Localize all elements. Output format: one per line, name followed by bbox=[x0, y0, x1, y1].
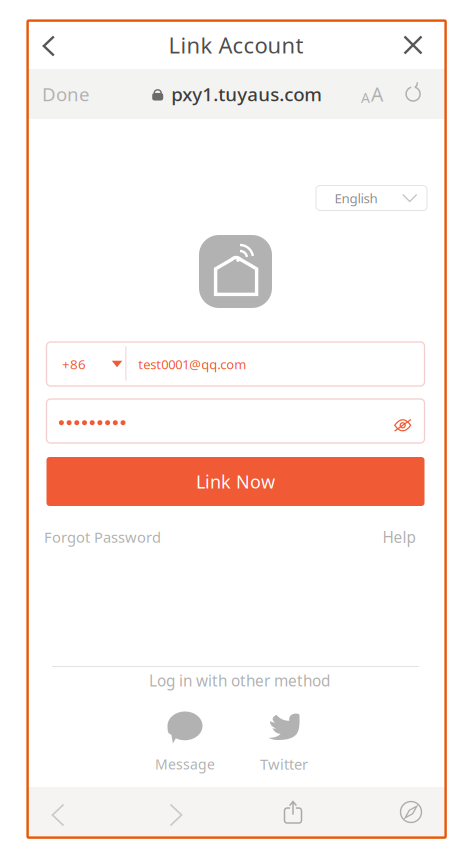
button[interactable]: Back bbox=[28, 790, 88, 840]
staticText: Help bbox=[382, 527, 415, 547]
button[interactable]: Twitter bbox=[239, 709, 329, 775]
staticText: Done bbox=[42, 81, 90, 107]
staticText: Twitter bbox=[260, 754, 308, 774]
staticText: English bbox=[334, 189, 377, 207]
staticText: +86 bbox=[62, 355, 86, 373]
button[interactable]: Message bbox=[140, 709, 230, 775]
button[interactable]: Help bbox=[382, 527, 415, 547]
button[interactable]: Tabs bbox=[381, 787, 441, 837]
staticText: Forgot Password bbox=[44, 527, 161, 547]
staticText: Link Account bbox=[169, 30, 304, 60]
button[interactable]: English bbox=[316, 185, 427, 210]
button[interactable]: Back bbox=[27, 22, 71, 70]
staticText: test0001@qq.com bbox=[138, 355, 246, 373]
button[interactable]: Link Now bbox=[46, 457, 424, 506]
button[interactable]: Done bbox=[30, 69, 102, 119]
staticText: A bbox=[371, 81, 383, 107]
staticText: A bbox=[361, 88, 370, 107]
button[interactable]: Forgot Password bbox=[44, 527, 161, 547]
staticText: pxy1.tuyaus.com bbox=[171, 81, 322, 107]
button[interactable]: Forward bbox=[146, 790, 206, 840]
button[interactable]: Reload bbox=[392, 69, 434, 119]
staticText: Log in with other method bbox=[149, 670, 330, 691]
button[interactable]: Share bbox=[263, 787, 323, 837]
button[interactable]: Show password bbox=[386, 408, 420, 442]
button[interactable]: Close bbox=[391, 21, 435, 69]
staticText: Link Now bbox=[196, 469, 275, 494]
button[interactable]: Text size bbox=[351, 69, 393, 119]
staticText: Message bbox=[155, 754, 215, 774]
